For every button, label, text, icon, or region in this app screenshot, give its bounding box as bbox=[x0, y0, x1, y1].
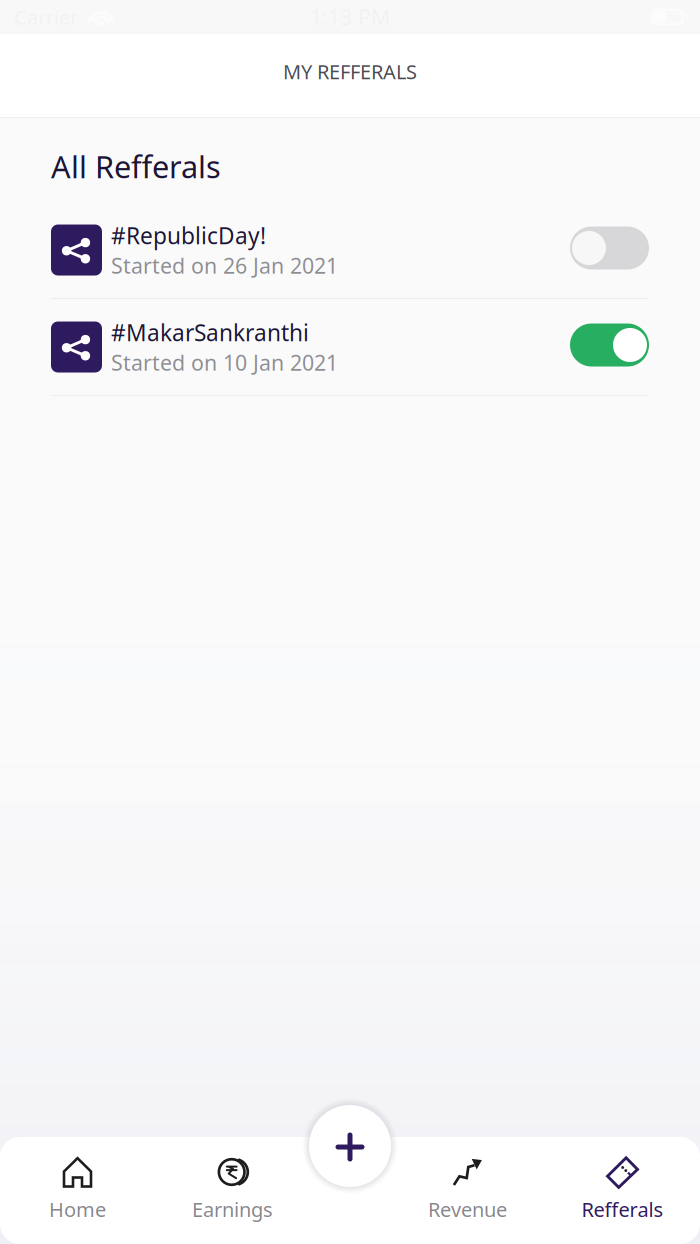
staticText: Refferals bbox=[581, 1196, 663, 1223]
staticText: All Refferals bbox=[51, 146, 221, 187]
staticText: Revenue bbox=[428, 1196, 507, 1223]
button[interactable]: Turn referral on bbox=[570, 226, 649, 269]
button[interactable]: Revenue bbox=[390, 1156, 545, 1223]
staticText: Started on 10 Jan 2021 bbox=[111, 348, 338, 377]
staticText: MY REFFERALS bbox=[283, 58, 417, 85]
staticText: #MakarSankranthi bbox=[111, 317, 309, 347]
staticText: Home bbox=[49, 1196, 106, 1223]
button[interactable]: #MakarSankranthi bbox=[0, 299, 700, 395]
staticText: Started on 26 Jan 2021 bbox=[111, 251, 338, 280]
button[interactable]: Turn referral off bbox=[570, 323, 649, 366]
button[interactable]: Refferals bbox=[545, 1156, 700, 1223]
staticText: #RepublicDay! bbox=[111, 220, 266, 250]
staticText: Earnings bbox=[192, 1196, 273, 1223]
button[interactable]: Add referral bbox=[302, 1098, 398, 1194]
button[interactable]: Earnings bbox=[155, 1156, 310, 1223]
button[interactable]: Home bbox=[0, 1156, 155, 1223]
button[interactable]: #RepublicDay! bbox=[0, 202, 700, 298]
